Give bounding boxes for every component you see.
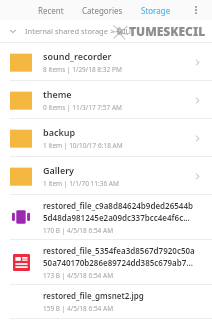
button[interactable]: More options (186, 0, 206, 20)
button[interactable]: backup (0, 119, 212, 156)
staticText: 0 items | 11/3/17 7:57 AM (43, 103, 123, 112)
staticText: sound_recorder (43, 50, 112, 62)
staticText: 1 item | 10/10/17 6:18 AM (43, 141, 123, 150)
button[interactable]: Recent (36, 3, 66, 18)
staticText: theme (43, 88, 72, 100)
button[interactable]: Gallery (0, 157, 212, 194)
staticText: backup (43, 126, 76, 138)
staticText: restored_file_gmsnet2.jpg (43, 290, 144, 301)
button[interactable]: restored_file_gmsnet2.jpg (0, 285, 212, 318)
button[interactable]: sound_recorder (0, 43, 212, 80)
staticText: 159 B | 4/5/18 6:54 AM (43, 304, 114, 313)
staticText: restored_file_c9a8d84624b9ded26544b (43, 200, 193, 211)
button[interactable]: Categories (80, 3, 125, 18)
staticText: 1 item | 1/1/70 11:36 AM (43, 179, 119, 188)
staticText: 173 B | 4/5/18 6:54 AM (43, 271, 114, 280)
staticText: Recent (38, 5, 64, 16)
button[interactable]: restored_file_c9a8d84624b9ded26544b (0, 195, 212, 239)
staticText: TUMESKECIL (129, 23, 206, 39)
button[interactable]: Storage (139, 3, 173, 18)
button[interactable]: restored_file_5354fea3d8567d7920c50a (0, 240, 212, 284)
staticText: 5d48da981245e2a09dc337bcc4e4f6c... (43, 212, 190, 223)
staticText: Gallery (43, 164, 74, 176)
staticText: 170 B | 4/5/18 6:54 AM (43, 226, 114, 235)
staticText: Categories (82, 5, 123, 16)
staticText: Internal shared storage > MIUI (25, 26, 134, 36)
staticText: Storage (141, 5, 171, 16)
staticText: 8 items | 1/29/18 8:32 PM (43, 65, 122, 74)
staticText: 50a740170b286e89724dd385c679ab7... (43, 257, 193, 268)
button[interactable]: theme (0, 81, 212, 118)
button[interactable]: Internal shared storage > MIUI (0, 20, 212, 42)
staticText: restored_file_5354fea3d8567d7920c50a (43, 245, 195, 256)
